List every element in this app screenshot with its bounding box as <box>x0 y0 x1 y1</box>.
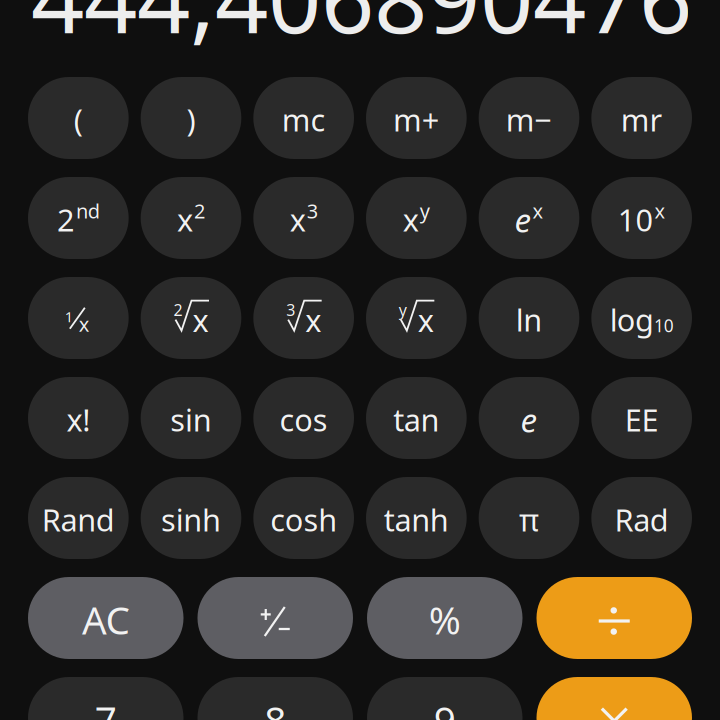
button[interactable]: Rad <box>591 477 692 559</box>
staticText: x <box>305 300 321 340</box>
button[interactable]: EE <box>591 377 692 459</box>
staticText: x <box>654 197 665 224</box>
staticText: x <box>79 311 90 337</box>
staticText: AC <box>82 594 130 645</box>
button[interactable]: ln <box>479 277 579 359</box>
button[interactable]: 9 <box>367 677 522 720</box>
staticText: 1 <box>65 307 73 326</box>
button[interactable]: x <box>141 177 241 259</box>
button[interactable]: cosh <box>253 477 354 559</box>
button[interactable]: Multiply <box>536 677 692 720</box>
staticText: log <box>610 299 654 340</box>
staticText: x <box>192 300 208 340</box>
staticText: % <box>429 594 461 645</box>
button[interactable]: 2 <box>28 177 129 259</box>
staticText: sinh <box>161 499 221 540</box>
staticText: 7 <box>95 694 117 720</box>
staticText: sin <box>170 399 212 440</box>
staticText: x! <box>66 399 90 440</box>
button[interactable]: Divide <box>536 577 692 659</box>
staticText: x <box>418 300 434 340</box>
staticText: m− <box>506 99 552 140</box>
staticText: ) <box>186 99 195 140</box>
button[interactable]: AC <box>28 577 183 659</box>
staticText: y <box>420 197 430 224</box>
staticText: tan <box>393 399 439 440</box>
staticText: Rad <box>614 499 669 540</box>
button[interactable]: mc <box>253 77 354 159</box>
button[interactable]: e <box>479 377 579 459</box>
staticText: x <box>532 197 543 224</box>
staticText: x <box>290 199 306 240</box>
button[interactable]: mr <box>591 77 692 159</box>
staticText: e <box>520 397 537 442</box>
button[interactable]: m+ <box>366 77 467 159</box>
button[interactable]: sin <box>141 377 241 459</box>
button[interactable]: 3 <box>253 277 354 359</box>
button[interactable]: π <box>479 477 579 559</box>
staticText: nd <box>76 197 100 224</box>
staticText: EE <box>625 399 658 440</box>
staticText: 2 <box>173 299 182 320</box>
staticText: x <box>177 199 193 240</box>
staticText: 8 <box>264 694 286 720</box>
button[interactable]: x <box>253 177 354 259</box>
staticText: e <box>514 197 531 242</box>
staticText: m+ <box>393 99 440 140</box>
staticText: 2 <box>194 197 205 224</box>
staticText: 444,406890476 <box>31 0 692 59</box>
button[interactable]: Toggle sign <box>197 577 353 659</box>
button[interactable]: 10 <box>591 177 692 259</box>
staticText: 2 <box>57 199 75 240</box>
staticText: x <box>403 199 419 240</box>
staticText: y <box>399 299 407 320</box>
staticText: 9 <box>434 694 456 720</box>
button[interactable]: 8 <box>197 677 353 720</box>
button[interactable]: Rand <box>28 477 129 559</box>
staticText: ( <box>74 99 83 140</box>
button[interactable]: 7 <box>28 677 183 720</box>
button[interactable]: tan <box>366 377 467 459</box>
staticText: 3 <box>307 197 318 224</box>
staticText: π <box>519 499 539 540</box>
button[interactable]: log <box>591 277 692 359</box>
button[interactable]: y <box>366 277 467 359</box>
button[interactable]: cos <box>253 377 354 459</box>
button[interactable]: 2 <box>141 277 241 359</box>
staticText: 10 <box>618 199 653 240</box>
staticText: mr <box>621 99 662 140</box>
staticText: cosh <box>270 499 337 540</box>
button[interactable]: % <box>367 577 522 659</box>
button[interactable]: ( <box>28 77 129 159</box>
button[interactable]: sinh <box>141 477 241 559</box>
button[interactable]: x! <box>28 377 129 459</box>
staticText: mc <box>282 99 325 140</box>
staticText: 3 <box>286 299 295 320</box>
button[interactable]: m− <box>479 77 579 159</box>
button[interactable]: 1 <box>28 277 129 359</box>
staticText: cos <box>279 399 328 440</box>
button[interactable]: e <box>479 177 579 259</box>
staticText: ln <box>516 299 542 340</box>
button[interactable]: ) <box>141 77 241 159</box>
staticText: Rand <box>42 499 115 540</box>
staticText: 10 <box>654 314 674 337</box>
button[interactable]: x <box>366 177 467 259</box>
staticText: tanh <box>384 499 449 540</box>
button[interactable]: tanh <box>366 477 467 559</box>
